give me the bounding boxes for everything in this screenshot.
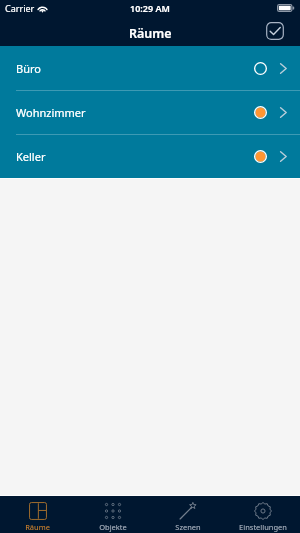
staticText: 10:29 AM bbox=[130, 2, 170, 14]
button[interactable]: Objekte bbox=[75, 496, 150, 533]
staticText: Einstellungen bbox=[239, 522, 287, 532]
staticText: Szenen bbox=[175, 522, 201, 532]
staticText: Keller bbox=[16, 149, 46, 164]
button[interactable]: Wohnzimmer bbox=[0, 90, 300, 134]
staticText: Objekte bbox=[99, 522, 127, 532]
button[interactable]: Büro bbox=[0, 46, 300, 90]
button[interactable]: Szenen bbox=[150, 496, 225, 533]
staticText: Wohnzimmer bbox=[16, 105, 86, 120]
button[interactable]: Keller bbox=[0, 134, 300, 178]
staticText: Räume bbox=[129, 25, 172, 42]
button[interactable]: Einstellungen bbox=[225, 496, 300, 533]
staticText: Räume bbox=[25, 522, 50, 532]
staticText: Carrier bbox=[5, 2, 35, 14]
staticText: Büro bbox=[16, 61, 41, 76]
button[interactable]: Räume bbox=[0, 496, 75, 533]
button[interactable]: Alle auswählen bbox=[266, 22, 284, 40]
